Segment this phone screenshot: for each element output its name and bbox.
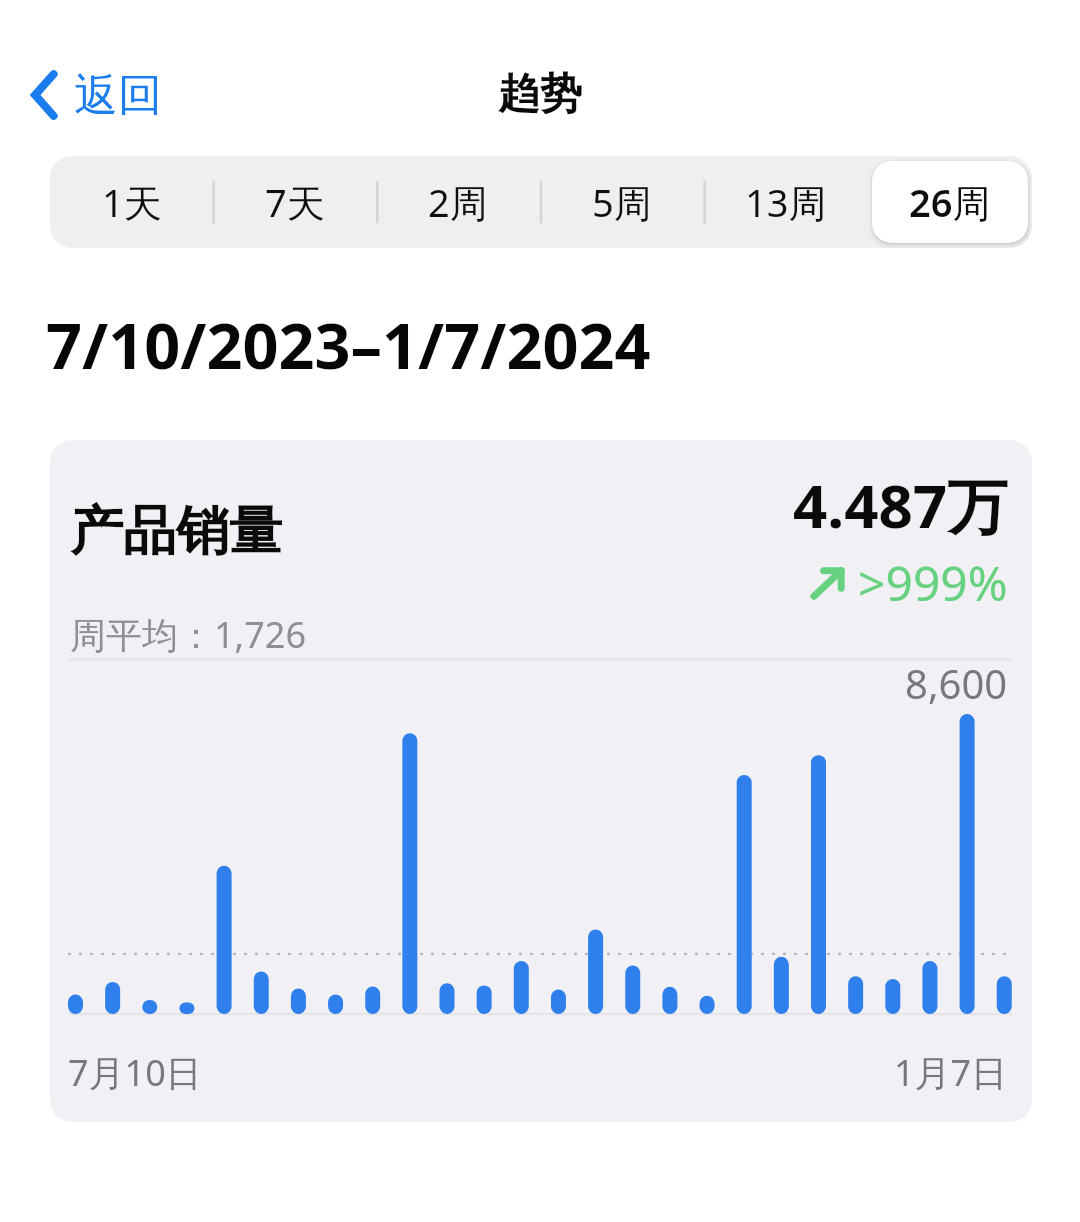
staticText: 1天 (102, 176, 162, 228)
staticText: 7天 (265, 176, 325, 228)
staticText: >999% (858, 550, 1008, 615)
button[interactable]: 2周 (380, 161, 536, 243)
staticText: 26周 (909, 176, 991, 228)
staticText: 产品销量 (70, 498, 282, 565)
button[interactable]: 13周 (708, 161, 864, 243)
staticText: 返回 (74, 68, 162, 123)
button[interactable]: 产品销量 (50, 440, 1032, 1122)
staticText: 2周 (428, 176, 488, 228)
button[interactable]: 1天 (54, 161, 209, 243)
staticText: 7月10日 (68, 1048, 202, 1097)
other: Back (28, 69, 60, 121)
button[interactable]: 26周 (872, 161, 1028, 243)
staticText: 13周 (745, 176, 827, 228)
staticText: 7/10/2023–1/7/2024 (46, 302, 651, 388)
button[interactable]: Back (28, 62, 162, 128)
staticText: 5周 (592, 176, 652, 228)
staticText: 趋势 (0, 68, 1080, 121)
button[interactable]: 7天 (217, 161, 372, 243)
staticText: 周平均：1,726 (70, 610, 307, 659)
button[interactable]: 5周 (544, 161, 700, 243)
staticText: 1月7日 (894, 1048, 1008, 1097)
staticText: 8,600 (905, 656, 1008, 710)
staticText: 4.487万 (793, 464, 1008, 546)
